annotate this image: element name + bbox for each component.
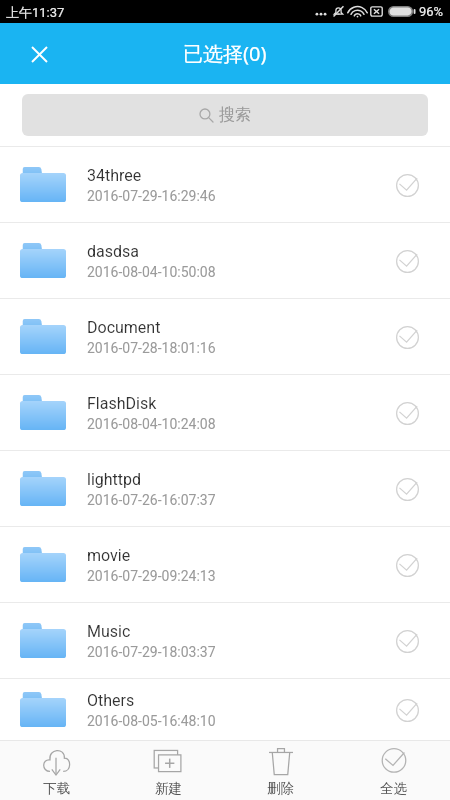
button[interactable]: Select [385, 543, 429, 587]
staticText: 2016-07-29-16:29:46 [87, 188, 216, 204]
staticText: 2016-07-26-16:07:37 [87, 492, 216, 508]
button[interactable]: 全选 [337, 741, 450, 800]
button[interactable]: lighttpd [0, 451, 450, 526]
button[interactable]: Music [0, 603, 450, 678]
button[interactable]: Close [21, 36, 57, 72]
staticText: FlashDisk [87, 394, 157, 413]
staticText: 搜索 [219, 105, 251, 125]
button[interactable]: Select [385, 163, 429, 207]
button[interactable]: Select [385, 619, 429, 663]
staticText: 2016-07-28-18:01:16 [87, 340, 216, 356]
staticText: 96% [419, 4, 444, 19]
button[interactable]: Others [0, 679, 450, 740]
staticText: 2016-07-29-18:03:37 [87, 644, 216, 660]
button[interactable]: 删除 [224, 741, 337, 800]
staticText: lighttpd [87, 470, 142, 489]
staticText: 2016-08-05-16:48:10 [87, 713, 216, 729]
staticText: 全选 [380, 780, 407, 797]
staticText: 2016-08-04-10:50:08 [87, 264, 216, 280]
button[interactable]: FlashDisk [0, 375, 450, 450]
button[interactable]: Select [385, 688, 429, 732]
staticText: Others [87, 691, 135, 710]
staticText: movie [87, 546, 131, 565]
staticText: 下载 [43, 780, 70, 797]
staticText: Document [87, 318, 161, 337]
button[interactable]: Select [385, 239, 429, 283]
button[interactable]: 下载 [0, 741, 112, 800]
button[interactable]: Document [0, 299, 450, 374]
staticText: 34three [87, 166, 142, 185]
button[interactable]: Select [385, 315, 429, 359]
staticText: 已选择(0) [183, 40, 267, 67]
staticText: 2016-07-29-09:24:13 [87, 568, 216, 584]
button[interactable]: dasdsa [0, 223, 450, 298]
staticText: dasdsa [87, 242, 139, 261]
button[interactable]: Select [385, 391, 429, 435]
button[interactable]: Select [385, 467, 429, 511]
staticText: 新建 [155, 780, 182, 797]
staticText: 2016-08-04-10:24:08 [87, 416, 216, 432]
button[interactable]: movie [0, 527, 450, 602]
button[interactable]: 新建 [112, 741, 224, 800]
staticText: 删除 [267, 780, 294, 797]
staticText: Music [87, 622, 131, 641]
staticText: 上午11:37 [6, 4, 65, 20]
button[interactable]: 搜索 [22, 94, 428, 136]
button[interactable]: 34three [0, 147, 450, 222]
